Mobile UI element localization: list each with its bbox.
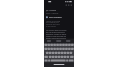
button[interactable]: Q3 roadmap — [46, 9, 57, 11]
staticText: We should revisit the scope for the seco… — [46, 29, 67, 39]
button[interactable]: Archive — [65, 3, 68, 6]
button[interactable]: Delete — [68, 3, 71, 6]
staticText: Thanks for putting this together, the ti… — [46, 20, 60, 28]
button[interactable] — [44, 15, 74, 19]
button[interactable]: More options — [71, 3, 74, 6]
staticText: Dana Whitfield — [49, 16, 62, 18]
staticText: Inbox · Planning — [46, 12, 59, 14]
